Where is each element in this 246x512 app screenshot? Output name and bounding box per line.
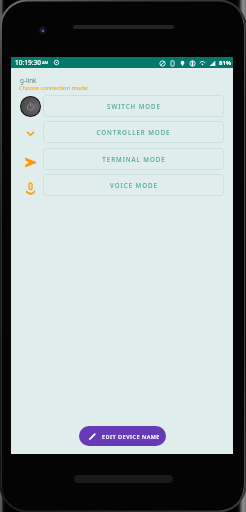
button[interactable]: TERMINAL MODE [43,148,224,170]
button[interactable]: CONTROLLER MODE [43,121,224,143]
staticText: VOICE MODE [110,181,158,189]
button[interactable]: EDIT DEVICE NAME [79,426,166,446]
button[interactable]: Controller mode [23,125,37,139]
staticText: 81% [219,59,232,67]
staticText: AM [42,60,49,65]
staticText: SWITCH MODE [107,102,161,110]
button[interactable]: Voice mode [23,178,37,192]
staticText: CONTROLLER MODE [96,128,171,136]
button[interactable]: Terminal mode [23,152,37,166]
staticText: TERMINAL MODE [102,155,166,163]
staticText: 10:19:30 [15,58,41,67]
staticText: g-link [20,76,37,85]
staticText: Choose connection mode: [19,84,89,92]
button[interactable]: SWITCH MODE [43,95,224,117]
staticText: EDIT DEVICE NAME [102,433,160,440]
button[interactable]: Switch mode power [20,96,41,117]
button[interactable]: VOICE MODE [43,174,224,196]
